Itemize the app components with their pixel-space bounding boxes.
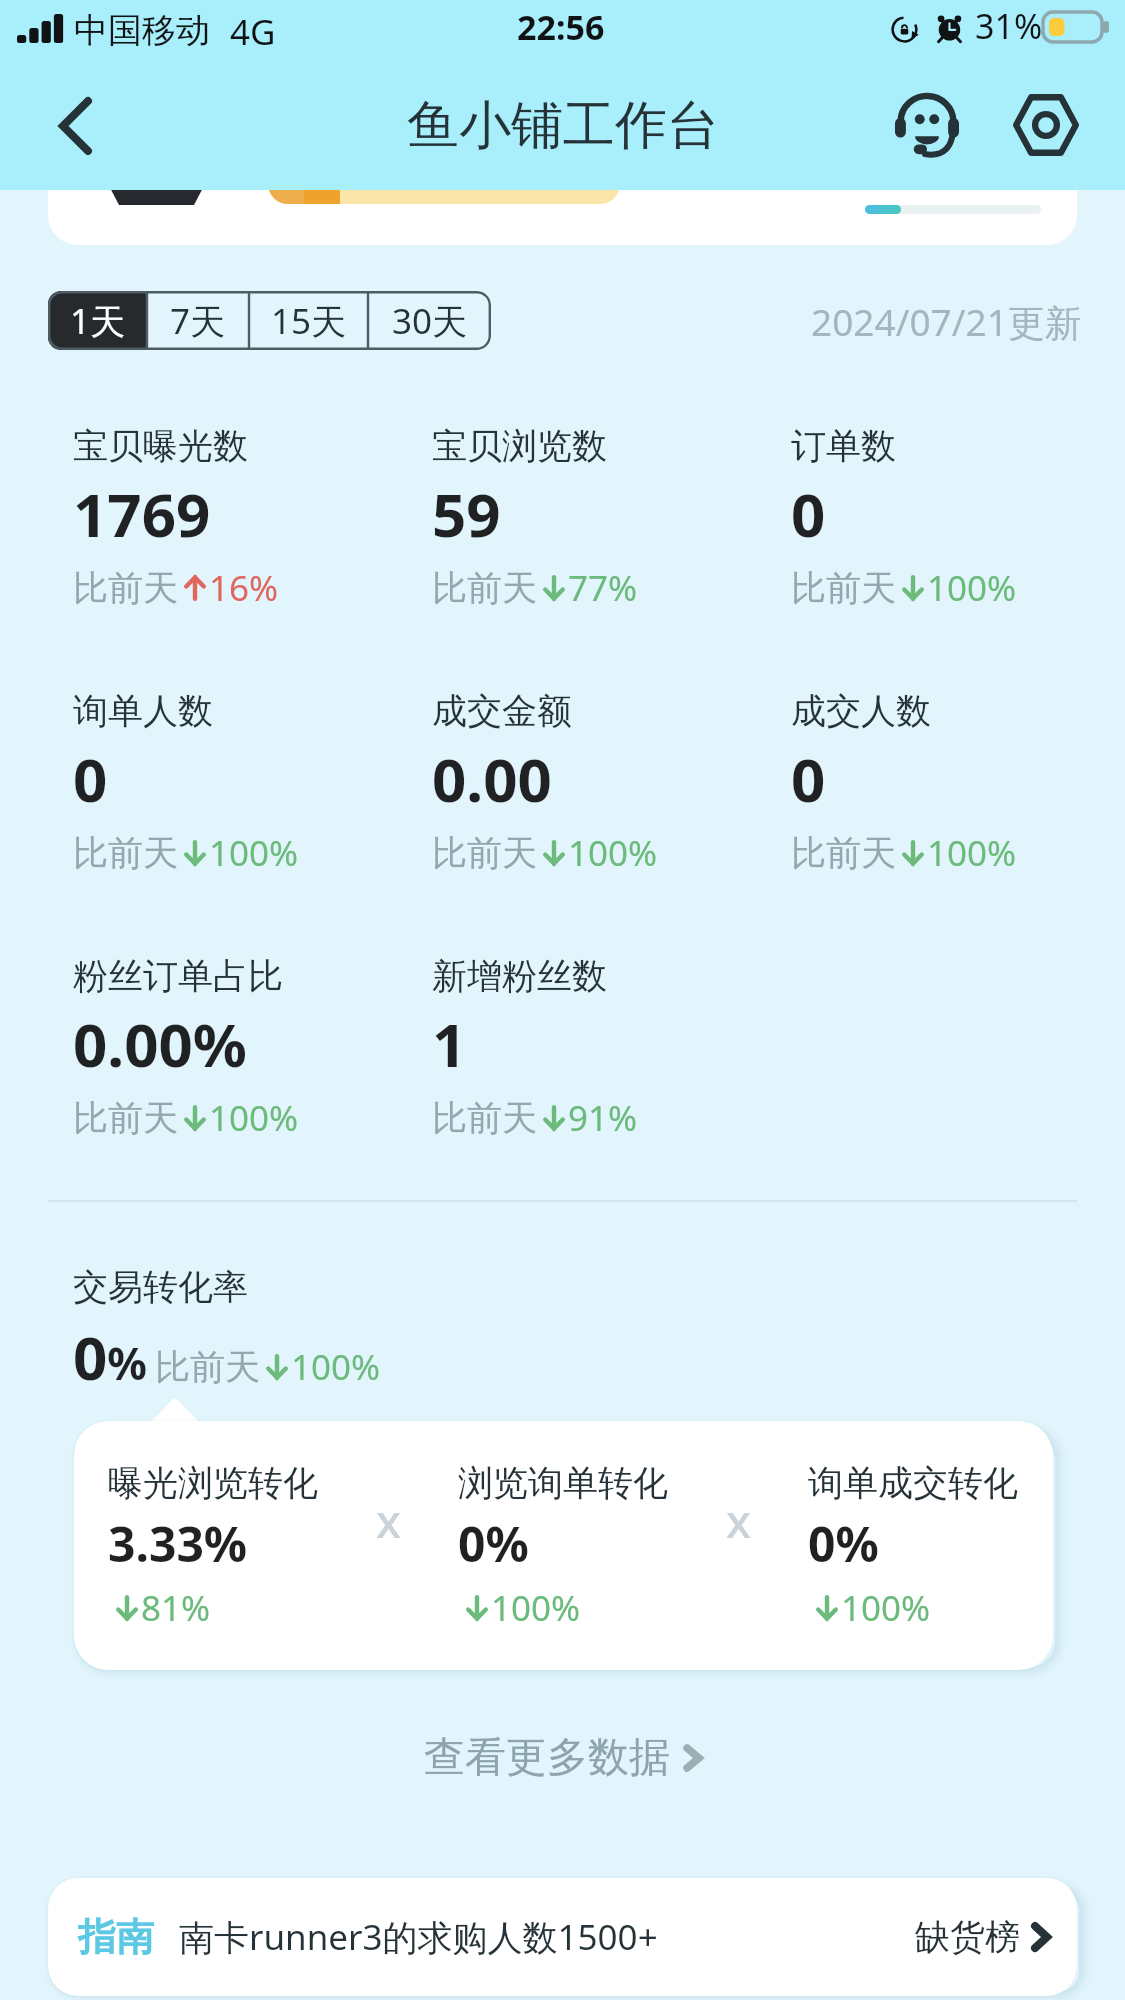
button[interactable]: 曝光浏览转化	[74, 1421, 1053, 1670]
button[interactable]: Back	[25, 76, 125, 176]
staticText: 浏览询单转化	[458, 1461, 668, 1505]
staticText: 4G	[230, 8, 276, 56]
staticText: 0%	[73, 1316, 148, 1398]
staticText: 100%	[209, 1094, 299, 1142]
staticText: 100%	[209, 829, 299, 877]
staticText: 中国移动	[74, 9, 210, 52]
button[interactable]: Customer service	[877, 75, 977, 175]
staticText: 新增粉丝数	[432, 954, 607, 998]
staticText: 比前天	[73, 1096, 178, 1140]
staticText: 查看更多数据	[424, 1732, 670, 1784]
button[interactable]	[48, 150, 1077, 245]
staticText: 比前天	[73, 831, 178, 875]
staticText: 0.00%	[73, 1003, 247, 1085]
staticText: 询单人数	[73, 689, 213, 733]
staticText: 0.00	[432, 738, 552, 820]
staticText: 30天	[392, 297, 468, 345]
staticText: 100%	[568, 829, 658, 877]
staticText: 100%	[841, 1584, 931, 1632]
button[interactable]: 查看更多数据	[0, 1730, 1125, 1786]
staticText: 100%	[291, 1343, 381, 1391]
staticText: 南卡runner3的求购人数1500+	[179, 1913, 658, 1961]
staticText: 0%	[808, 1511, 879, 1576]
button[interactable]: 指南	[48, 1878, 1077, 1996]
staticText: 成交金额	[432, 689, 572, 733]
staticText: 1	[432, 1003, 467, 1085]
button[interactable]: 缺货榜	[915, 1878, 1051, 1996]
staticText: 宝贝曝光数	[73, 424, 248, 468]
staticText: 1769	[73, 473, 211, 555]
staticText: 31%	[975, 3, 1043, 49]
staticText: 15天	[271, 297, 347, 345]
staticText: 指南	[78, 1913, 154, 1961]
staticText: 比前天	[791, 566, 896, 610]
button[interactable]: Settings	[996, 75, 1096, 175]
staticText: 比前天	[432, 566, 537, 610]
staticText: 91%	[568, 1094, 638, 1142]
staticText: 询单成交转化	[808, 1461, 1018, 1505]
staticText: 曝光浏览转化	[108, 1461, 318, 1505]
staticText: 100%	[927, 564, 1017, 612]
staticText: 59	[432, 473, 501, 555]
staticText: 比前天	[155, 1345, 260, 1389]
staticText: 比前天	[73, 566, 178, 610]
staticText: 交易转化率	[73, 1265, 248, 1309]
staticText: 100%	[927, 829, 1017, 877]
staticText: 77%	[568, 564, 638, 612]
staticText: x	[726, 1489, 751, 1552]
staticText: 7天	[170, 297, 226, 345]
staticText: 粉丝订单占比	[73, 954, 283, 998]
staticText: 0%	[458, 1511, 529, 1576]
staticText: 3.33%	[108, 1511, 248, 1576]
staticText: 22:56	[517, 4, 605, 50]
staticText: 81%	[141, 1584, 211, 1632]
button[interactable]: 1天	[48, 291, 147, 350]
button[interactable]: 7天	[147, 291, 249, 350]
staticText: 比前天	[432, 1096, 537, 1140]
staticText: 比前天	[432, 831, 537, 875]
staticText: 比前天	[791, 831, 896, 875]
staticText: 0	[791, 738, 826, 820]
button[interactable]: 30天	[368, 291, 491, 350]
staticText: 鱼小铺工作台	[407, 93, 719, 159]
staticText: 100%	[491, 1584, 581, 1632]
staticText: x	[376, 1489, 401, 1552]
staticText: 2024/07/21更新	[811, 296, 1082, 347]
staticText: 宝贝浏览数	[432, 424, 607, 468]
staticText: 1天	[70, 297, 126, 345]
staticText: 缺货榜	[915, 1915, 1020, 1959]
button[interactable]: 15天	[249, 291, 368, 350]
staticText: 订单数	[791, 424, 896, 468]
staticText: 0	[73, 738, 108, 820]
staticText: 0	[791, 473, 826, 555]
staticText: 16%	[209, 564, 279, 612]
staticText: 成交人数	[791, 689, 931, 733]
